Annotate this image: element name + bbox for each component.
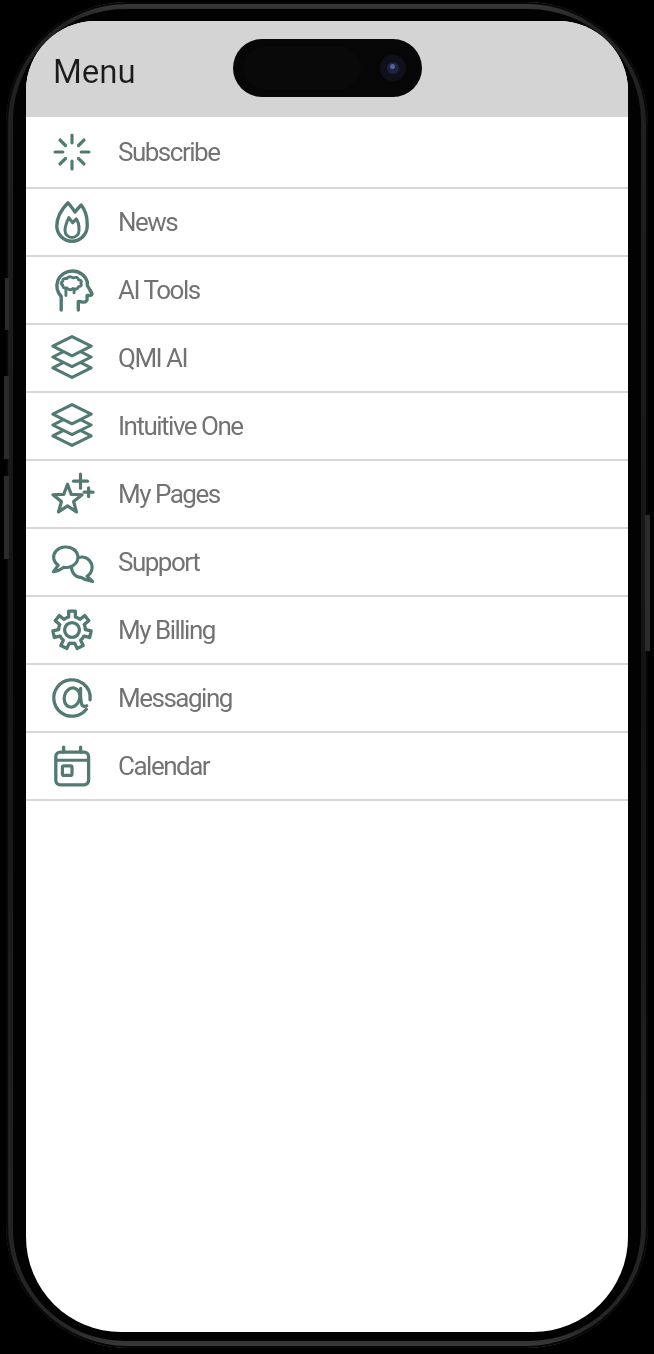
staticText: QMI AI xyxy=(118,343,188,373)
button[interactable]: Calendar xyxy=(26,733,628,799)
button[interactable]: Intuitive One xyxy=(26,393,628,459)
staticText: Calendar xyxy=(118,751,210,781)
staticText: AI Tools xyxy=(118,275,200,305)
button[interactable]: Messaging xyxy=(26,665,628,731)
button[interactable]: My Pages xyxy=(26,461,628,527)
button[interactable]: Support xyxy=(26,529,628,595)
staticText: Support xyxy=(118,547,200,577)
button[interactable]: QMI AI xyxy=(26,325,628,391)
staticText: Subscribe xyxy=(118,137,220,167)
button[interactable]: My Billing xyxy=(26,597,628,663)
staticText: News xyxy=(118,207,178,237)
staticText: My Pages xyxy=(118,479,220,509)
staticText: My Billing xyxy=(118,615,215,645)
button[interactable]: AI Tools xyxy=(26,257,628,323)
staticText: Intuitive One xyxy=(118,411,243,441)
button[interactable]: Subscribe xyxy=(26,117,628,187)
staticText: Messaging xyxy=(118,683,232,713)
staticText: Menu xyxy=(53,52,136,91)
button[interactable]: News xyxy=(26,189,628,255)
